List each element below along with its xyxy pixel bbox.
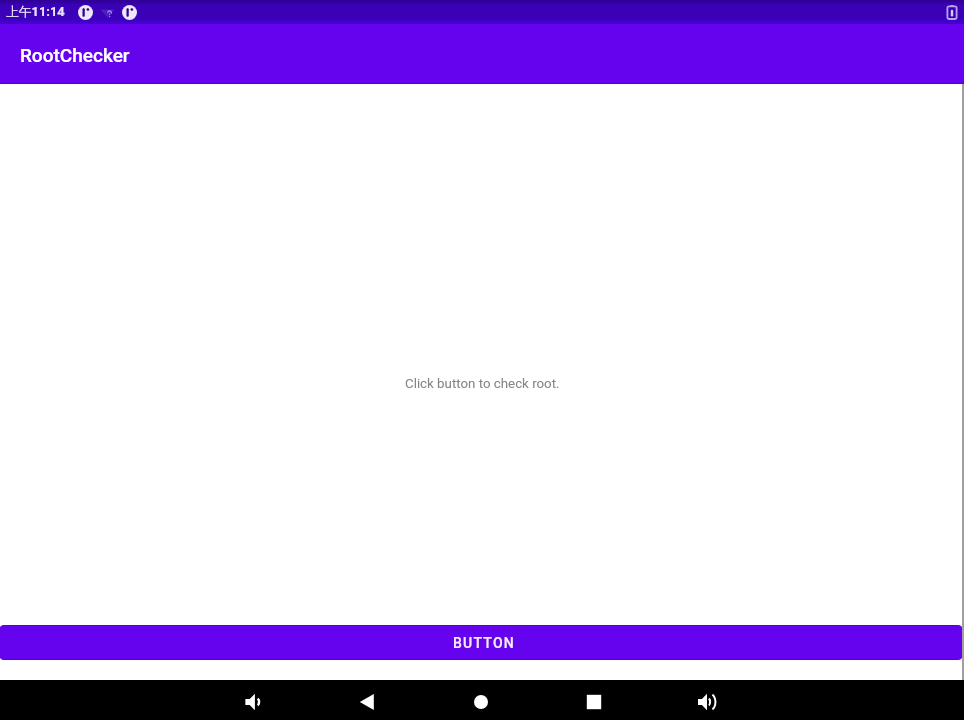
button[interactable]: BUTTON	[0, 625, 962, 660]
button[interactable]: Back	[347, 682, 387, 720]
button[interactable]: Volume down	[234, 682, 274, 720]
staticText: Click button to check root.	[405, 376, 560, 392]
button[interactable]: Home	[461, 682, 501, 720]
button[interactable]: Volume up	[687, 682, 727, 720]
staticText: RootChecker	[20, 44, 130, 66]
staticText: 上午11:14	[6, 4, 65, 20]
staticText: BUTTON	[453, 635, 516, 651]
button[interactable]: Recents	[574, 682, 614, 720]
